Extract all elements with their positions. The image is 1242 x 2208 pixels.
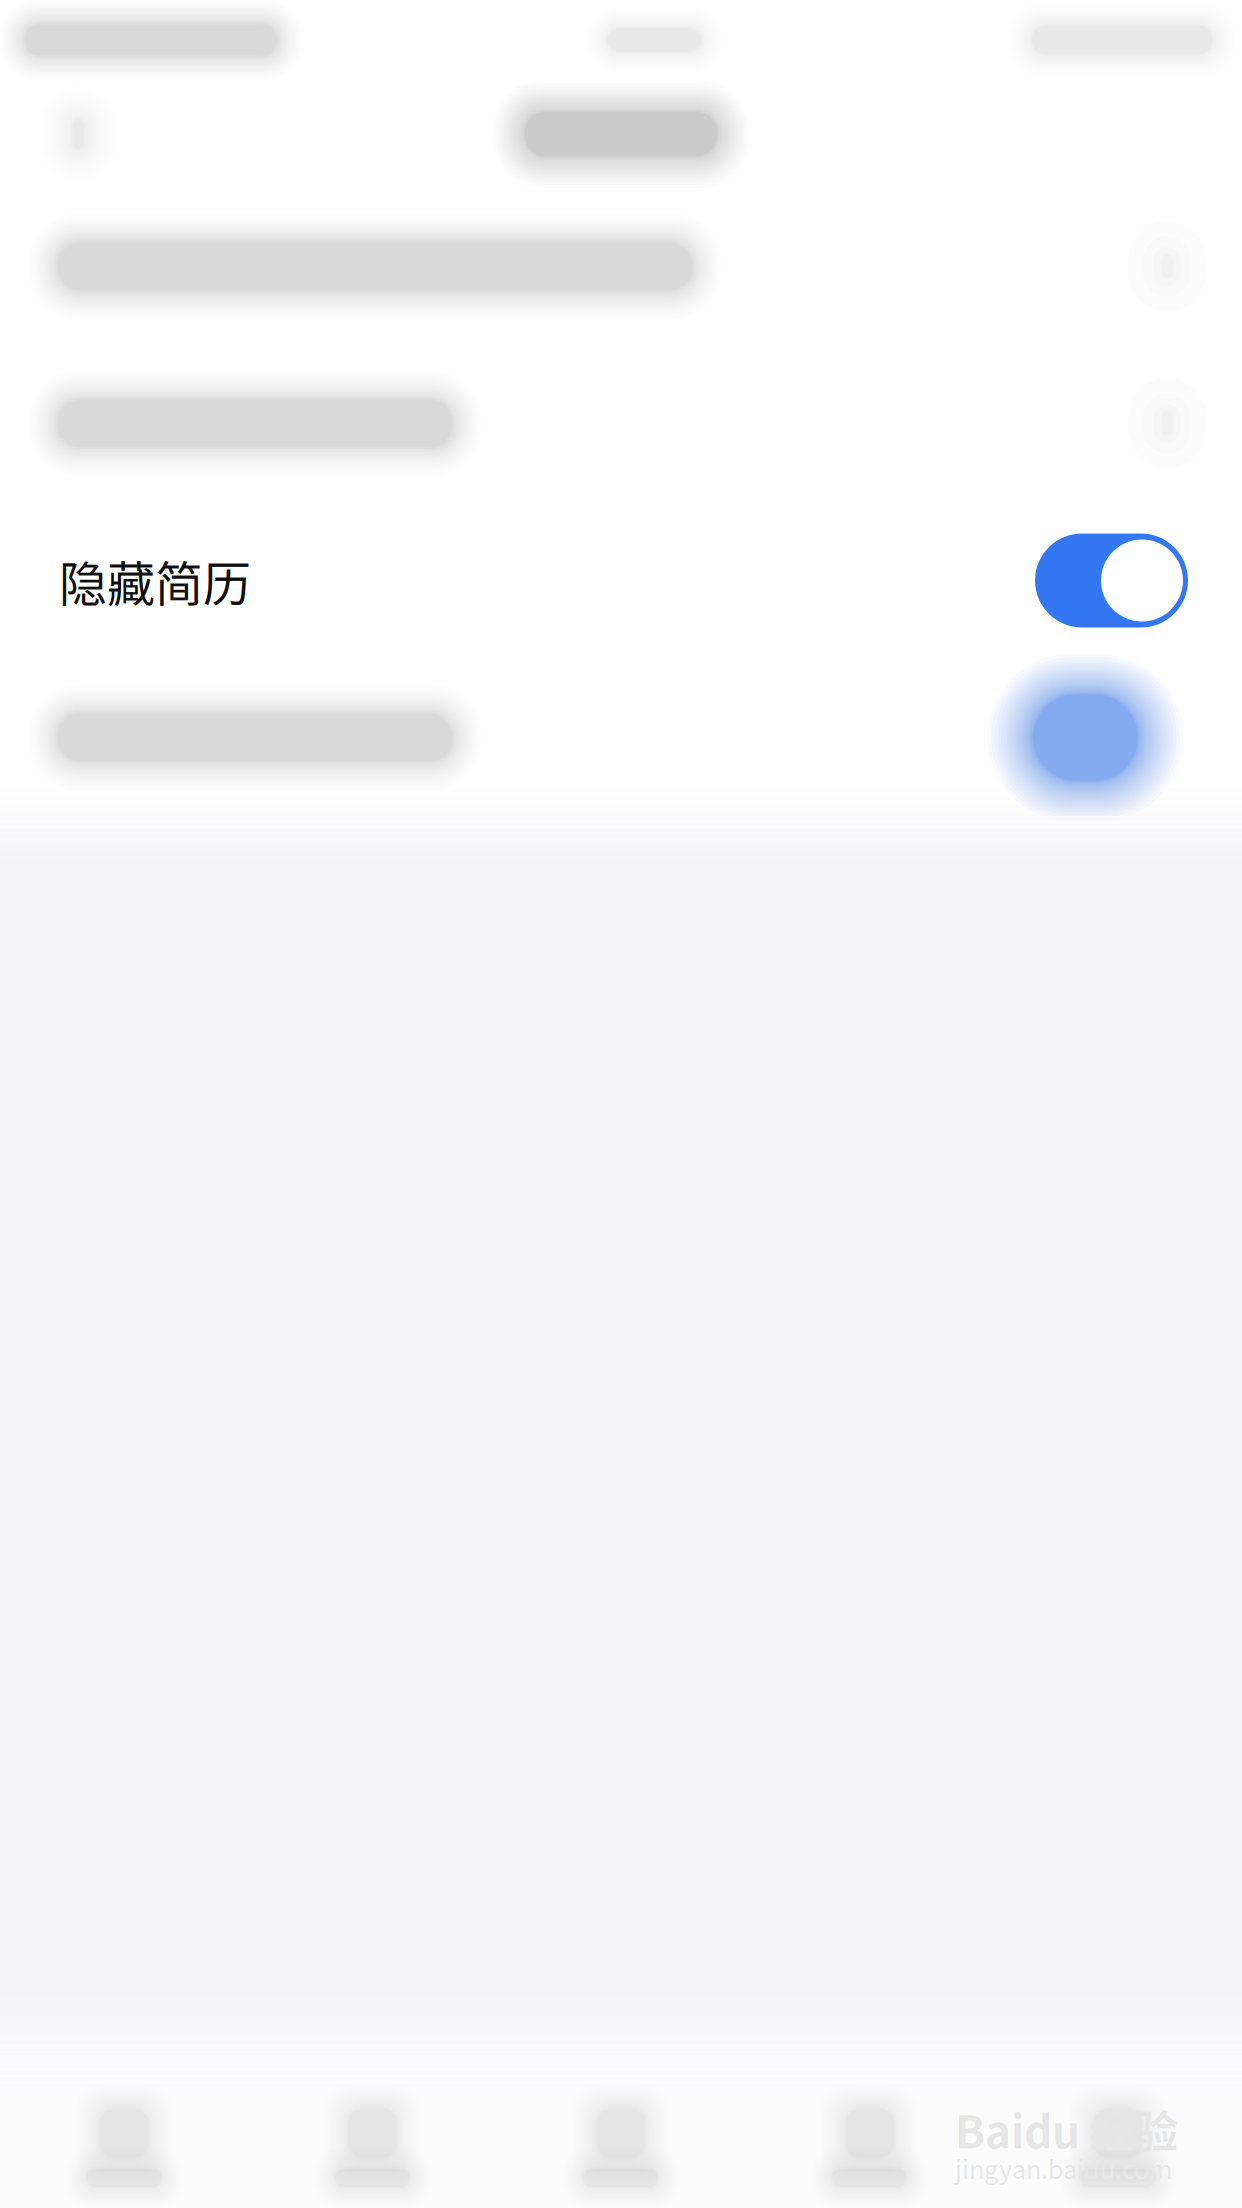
- staticText: 隐藏简历: [59, 546, 251, 615]
- button[interactable]: Messages: [497, 2088, 745, 2208]
- button[interactable]: Setting toggle: [0, 659, 1242, 816]
- button[interactable]: 隐藏简历: [0, 502, 1242, 659]
- button[interactable]: Setting: [0, 345, 1242, 502]
- button[interactable]: Setting: [0, 188, 1242, 345]
- staticText: Baidu 经验: [955, 2097, 1178, 2161]
- button[interactable]: Back: [0, 80, 138, 188]
- button[interactable]: Discover: [745, 2088, 994, 2208]
- button[interactable]: Profile: [994, 2088, 1242, 2208]
- button[interactable]: Jobs: [248, 2088, 497, 2208]
- button[interactable]: Home: [0, 2088, 248, 2208]
- staticText: jingyan.baidu.com: [955, 2150, 1172, 2186]
